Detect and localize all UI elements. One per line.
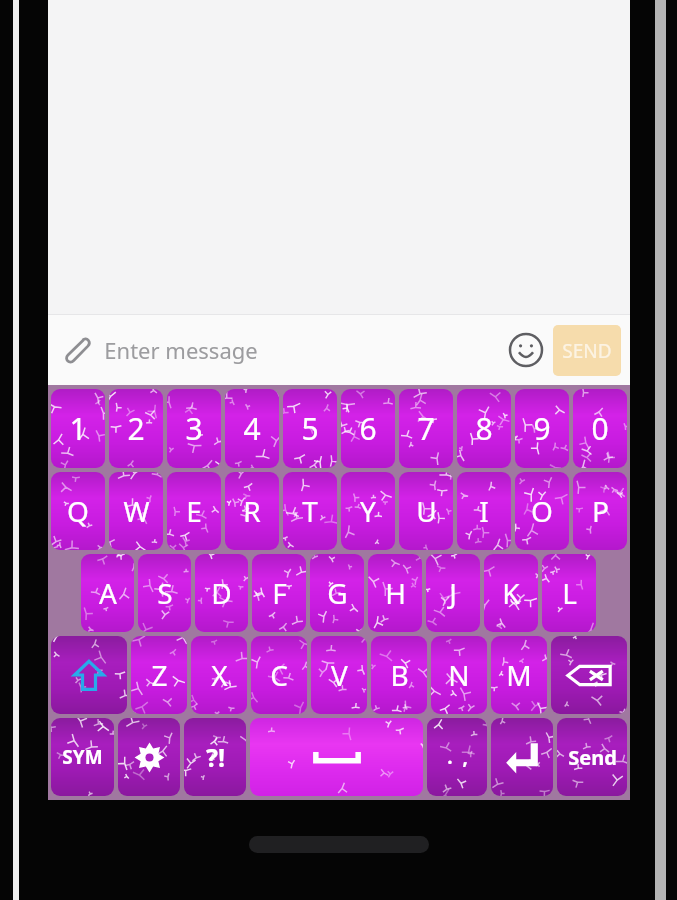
button[interactable]: Attach file (48, 322, 104, 378)
staticText: ?! (206, 740, 225, 774)
button[interactable]: V (311, 636, 367, 714)
button[interactable]: Emoji (499, 323, 553, 377)
staticText: T (302, 492, 318, 530)
staticText: K (502, 574, 520, 612)
button[interactable]: 2 (109, 389, 163, 468)
button[interactable]: J (426, 554, 480, 632)
staticText: D (211, 574, 232, 612)
button[interactable]: K (484, 554, 538, 632)
button[interactable]: S (138, 554, 191, 632)
button[interactable]: H (368, 554, 422, 632)
button[interactable]: 0 (573, 389, 627, 468)
staticText: L (562, 574, 577, 612)
button[interactable]: G (310, 554, 364, 632)
staticText: 9 (533, 408, 551, 449)
staticText: 4 (243, 408, 261, 449)
staticText: 0 (591, 408, 609, 449)
button[interactable]: 1 (51, 389, 105, 468)
staticText: A (99, 574, 117, 612)
button[interactable]: 9 (515, 389, 569, 468)
staticText: 7 (417, 408, 435, 449)
button[interactable]: F (252, 554, 306, 632)
staticText: SYM (62, 744, 103, 770)
button[interactable]: X (191, 636, 247, 714)
button[interactable]: 5 (283, 389, 337, 468)
button[interactable]: A (81, 554, 134, 632)
staticText: SEND (562, 338, 612, 364)
staticText: O (531, 492, 553, 530)
button[interactable]: SEND (553, 325, 621, 376)
button[interactable]: Z (131, 636, 187, 714)
staticText: 3 (185, 408, 203, 449)
staticText: W (123, 492, 150, 530)
button[interactable]: E (167, 472, 221, 550)
staticText: . , (447, 744, 468, 770)
button[interactable]: T (283, 472, 337, 550)
button[interactable]: O (515, 472, 569, 550)
staticText: Y (360, 492, 376, 530)
staticText: Q (67, 492, 89, 530)
staticText: E (186, 492, 202, 530)
button[interactable]: Y (341, 472, 395, 550)
staticText: 8 (475, 408, 493, 449)
staticText: J (449, 574, 457, 612)
staticText: U (416, 492, 437, 530)
staticText: Z (151, 656, 168, 694)
button[interactable]: D (195, 554, 248, 632)
button[interactable]: Settings (118, 718, 180, 796)
button[interactable]: 7 (399, 389, 453, 468)
staticText: G (327, 574, 348, 612)
staticText: C (270, 656, 288, 694)
button[interactable]: Shift (51, 636, 127, 714)
button[interactable]: Backspace (551, 636, 627, 714)
staticText: Enter message (104, 335, 258, 365)
button[interactable]: 8 (457, 389, 511, 468)
button[interactable]: ?! (184, 718, 246, 796)
button[interactable]: I (457, 472, 511, 550)
staticText: B (390, 656, 409, 694)
button[interactable]: 4 (225, 389, 279, 468)
staticText: I (479, 492, 489, 530)
button[interactable]: Q (51, 472, 105, 550)
button[interactable]: B (371, 636, 427, 714)
button[interactable]: Space (250, 718, 423, 796)
button[interactable]: C (251, 636, 307, 714)
staticText: R (243, 492, 261, 530)
staticText: S (157, 574, 173, 612)
staticText: 5 (301, 408, 319, 449)
button[interactable]: W (109, 472, 163, 550)
button[interactable]: 6 (341, 389, 395, 468)
staticText: Send (568, 744, 617, 771)
staticText: 1 (69, 408, 87, 449)
button[interactable]: . , (427, 718, 487, 796)
staticText: N (448, 656, 470, 694)
button[interactable]: U (399, 472, 453, 550)
button[interactable]: SYM (51, 718, 114, 796)
button[interactable]: N (431, 636, 487, 714)
staticText: F (272, 574, 287, 612)
button[interactable]: 3 (167, 389, 221, 468)
staticText: V (331, 656, 348, 694)
button[interactable]: Enter (491, 718, 553, 796)
staticText: P (592, 492, 609, 530)
button[interactable]: L (542, 554, 596, 632)
button[interactable]: Send (557, 718, 627, 796)
staticText: 6 (359, 408, 377, 449)
button[interactable]: M (491, 636, 547, 714)
staticText: X (211, 656, 228, 694)
staticText: H (385, 574, 406, 612)
staticText: 2 (127, 408, 145, 449)
button[interactable]: P (573, 472, 627, 550)
staticText: M (506, 656, 532, 694)
button[interactable]: R (225, 472, 279, 550)
